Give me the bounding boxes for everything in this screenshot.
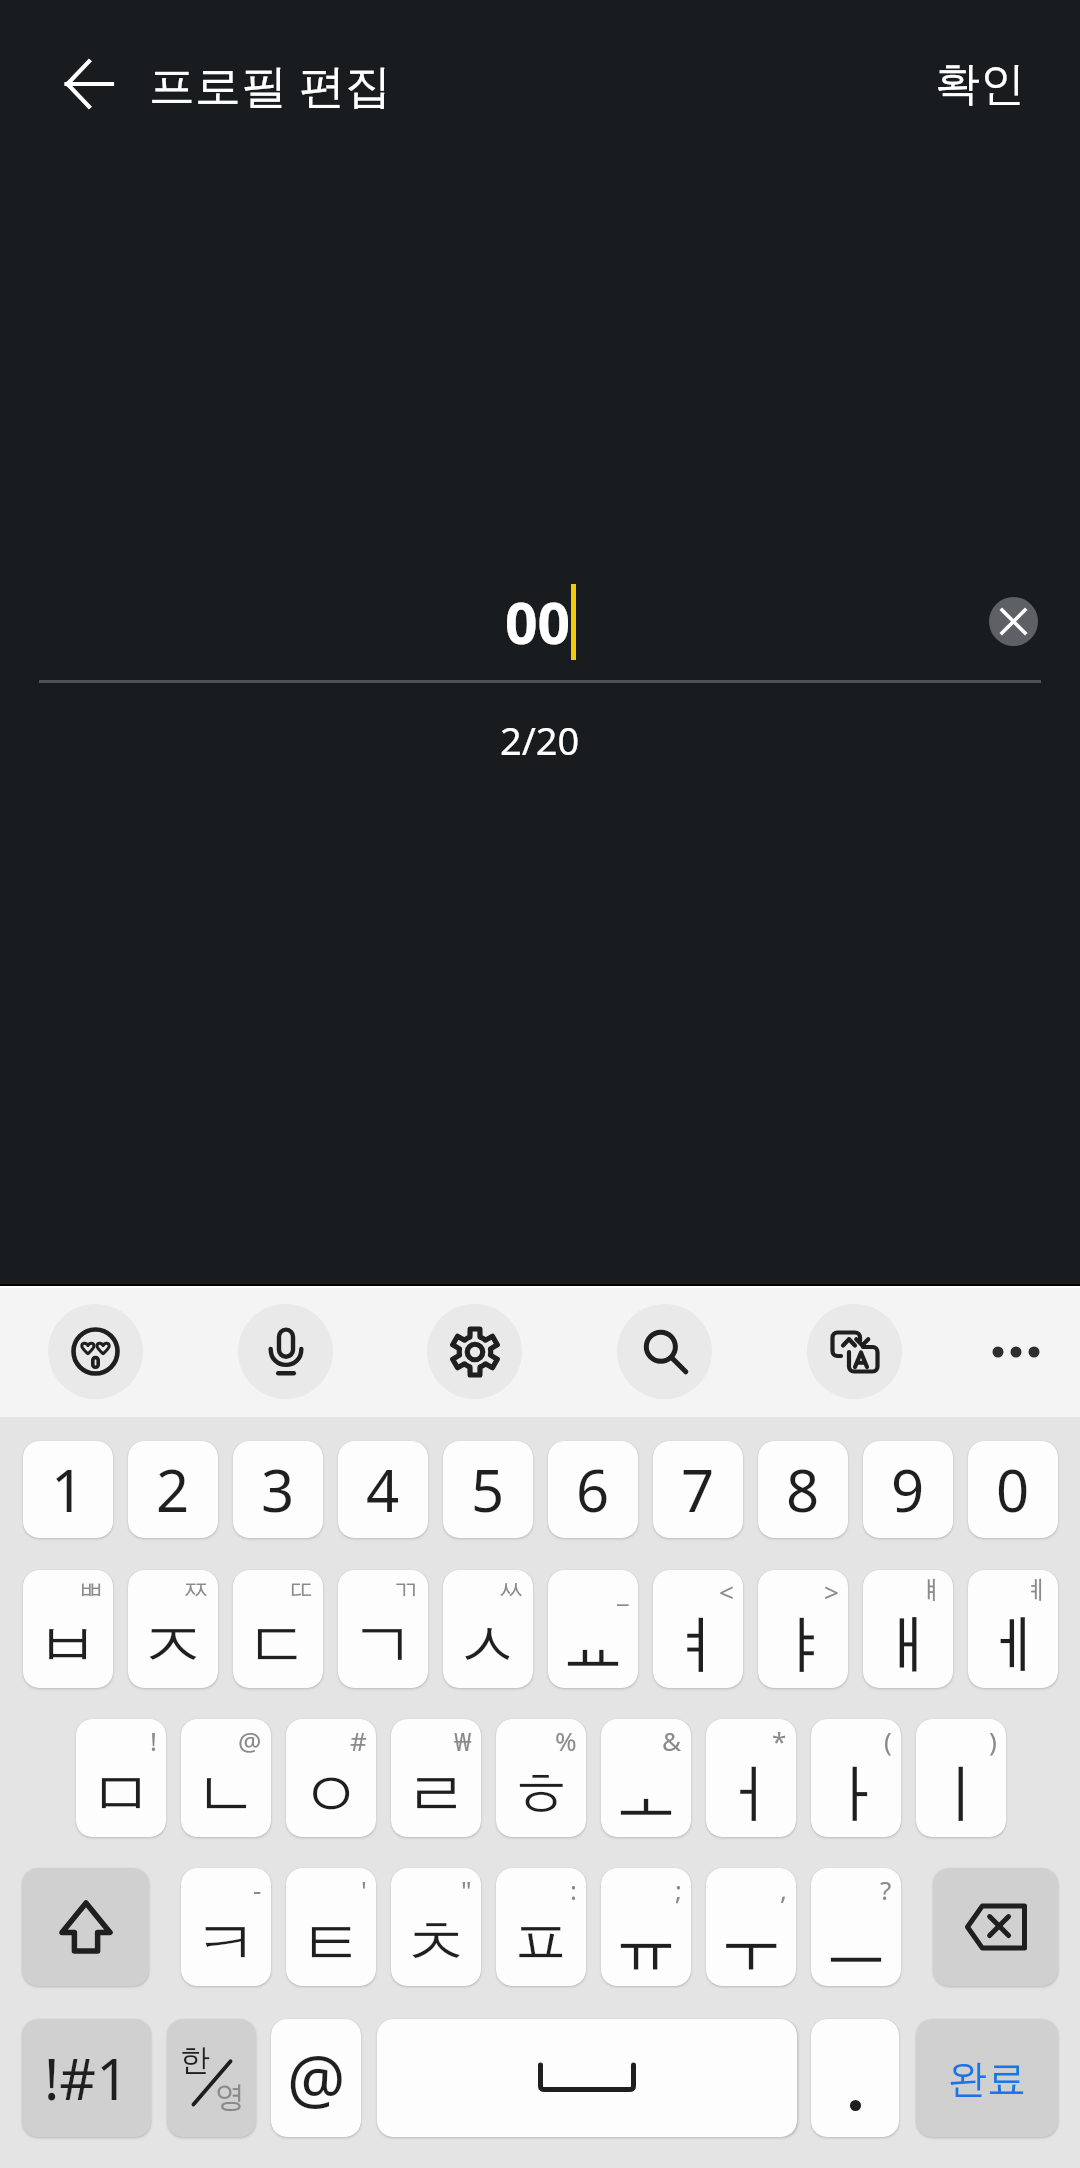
staticText: ㅊ [404,1903,468,1984]
button[interactable]: 6 [548,1441,638,1538]
button[interactable]: Back [58,24,120,144]
staticText: 2 [156,1450,190,1529]
staticText: 5 [471,1450,505,1529]
button[interactable]: Emoji [48,1304,143,1399]
staticText: ㅈ [141,1605,205,1686]
staticText: ㄴ [194,1754,258,1835]
staticText: : [570,1872,577,1907]
staticText: 확인 [935,56,1025,113]
button[interactable]: 5 [443,1441,533,1538]
button[interactable]: 1 [23,1441,113,1538]
staticText: ㅌ [299,1903,363,1984]
staticText: _ [617,1574,629,1609]
button[interactable]: " [391,1868,481,1986]
button[interactable]: ₩ [391,1719,481,1837]
staticText: 00 [505,583,571,661]
staticText: ㅃ [78,1574,104,1607]
button[interactable]: ㅉ [128,1570,218,1688]
staticText: ' [361,1872,367,1907]
staticText: ㅐ [876,1605,940,1686]
button[interactable]: Language toggle [167,2019,256,2137]
button[interactable]: # [286,1719,376,1837]
staticText: ㅇ [299,1754,363,1835]
button[interactable]: ㅆ [443,1570,533,1688]
button[interactable]: : [496,1868,586,1986]
button[interactable]: ㅃ [23,1570,113,1688]
button[interactable]: 완료 [916,2019,1058,2137]
staticText: ㅠ [614,1903,678,1984]
button[interactable]: Search [617,1304,712,1399]
staticText: 프로필 편집 [149,53,391,116]
button[interactable]: < [653,1570,743,1688]
staticText: ㅛ [561,1605,625,1686]
button[interactable]: ' [286,1868,376,1986]
button[interactable]: ; [601,1868,691,1986]
button[interactable]: Period [811,2019,899,2137]
button[interactable]: % [496,1719,586,1837]
staticText: ㅣ [929,1754,993,1835]
staticText: ㄲ [393,1574,419,1607]
staticText: ㅎ [509,1754,573,1835]
staticText: ㅏ [824,1754,888,1835]
button[interactable]: 2 [128,1441,218,1538]
button[interactable]: & [601,1719,691,1837]
staticText: 완료 [948,2054,1026,2103]
button[interactable]: ? [811,1868,901,1986]
button[interactable]: ! [76,1719,166,1837]
button[interactable]: - [181,1868,271,1986]
staticText: ? [880,1872,892,1907]
staticText: ; [675,1872,682,1907]
button[interactable]: Voice input [238,1304,333,1399]
button[interactable]: @ [271,2019,361,2137]
staticText: - [253,1872,262,1907]
button[interactable]: 3 [233,1441,323,1538]
button[interactable]: Backspace [933,1868,1058,1986]
staticText: ㅗ [614,1754,678,1835]
staticText: ㅆ [498,1574,524,1607]
staticText: * [772,1723,787,1758]
staticText: ㄹ [404,1754,468,1835]
button[interactable]: ) [916,1719,1006,1837]
staticText: ㅋ [194,1903,258,1984]
staticText: ( [884,1723,892,1758]
button[interactable]: @ [181,1719,271,1837]
button[interactable]: ㅖ [968,1570,1058,1688]
button[interactable]: 7 [653,1441,743,1538]
button[interactable]: Settings [427,1304,522,1399]
button[interactable]: Shift [22,1868,149,1986]
staticText: ㅓ [719,1754,783,1835]
button[interactable]: 4 [338,1441,428,1538]
staticText: ₩ [454,1723,472,1758]
staticText: ㄸ [288,1574,314,1607]
button[interactable]: ㅒ [863,1570,953,1688]
staticText: ㅍ [509,1903,573,1984]
button[interactable]: Space [377,2019,797,2137]
staticText: " [461,1872,472,1907]
staticText: > [824,1574,839,1609]
button[interactable]: !#1 [22,2019,151,2137]
button[interactable]: Clear text [989,597,1038,646]
staticText: % [555,1723,577,1758]
staticText: 4 [366,1450,400,1529]
button[interactable]: , [706,1868,796,1986]
staticText: ㅉ [183,1574,209,1607]
button[interactable]: > [758,1570,848,1688]
staticText: 3 [261,1450,295,1529]
button[interactable]: ( [811,1719,901,1837]
button[interactable]: 9 [863,1441,953,1538]
staticText: ㅅ [456,1605,520,1686]
staticText: 7 [681,1450,715,1529]
button[interactable]: ㄸ [233,1570,323,1688]
button[interactable]: 0 [968,1441,1058,1538]
staticText: ㅡ [824,1903,888,1984]
button[interactable]: ㄲ [338,1570,428,1688]
staticText: 1 [51,1450,85,1529]
button[interactable]: _ [548,1570,638,1688]
button[interactable]: 확인 [905,32,1055,137]
button[interactable]: Translate [807,1304,902,1399]
button[interactable]: 8 [758,1441,848,1538]
staticText: ㅜ [719,1903,783,1984]
button[interactable]: * [706,1719,796,1837]
button[interactable]: More options [968,1305,1062,1399]
staticText: ㄱ [351,1605,415,1686]
